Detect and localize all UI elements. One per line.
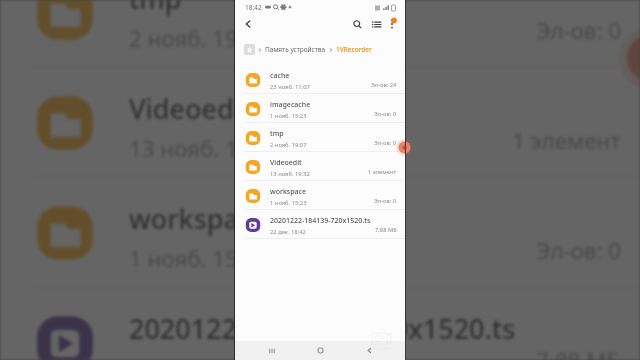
button[interactable]: Back [358, 341, 380, 360]
button[interactable]: Videoedit [234, 152, 406, 181]
staticText: 20201222-184139-720x1520.ts [129, 310, 516, 347]
staticText: Videoedit [129, 90, 252, 127]
staticText: 1 нояб. 15:23 [129, 243, 270, 273]
staticText: 22 дек. 18:42 [129, 353, 267, 360]
staticText: 22 дек. 18:42 [270, 228, 306, 236]
staticText: cache [270, 71, 290, 81]
staticText: Эл-ов: 0 [374, 197, 397, 205]
button[interactable]: View as list [367, 15, 385, 33]
staticText: 23 нояб. 11:07 [270, 83, 310, 91]
button[interactable]: cache [234, 65, 406, 94]
staticText: 2 нояб. 19:07 [270, 141, 307, 149]
button[interactable]: 20201222-184139-720x1520.ts [234, 210, 406, 239]
staticText: 1 нояб. 15:23 [270, 199, 307, 207]
button[interactable]: workspace [234, 181, 406, 210]
staticText: 1VRecorder [336, 45, 372, 54]
button[interactable]: tmp [0, 0, 640, 68]
staticText: tmp [129, 0, 182, 17]
button[interactable]: Videoedit [0, 68, 640, 178]
staticText: Videoedit [270, 158, 302, 168]
staticText: Эл-ов: 24 [371, 81, 397, 89]
button[interactable]: Recent apps [261, 341, 283, 360]
button[interactable]: 20201222-184139-720x1520.ts [0, 288, 640, 360]
button[interactable]: More options [383, 15, 401, 33]
staticText: 1 нояб. 15:23 [270, 112, 307, 120]
button[interactable]: tmp [234, 123, 406, 152]
staticText: 20201222-184139-720x1520.ts [270, 216, 371, 226]
button[interactable]: Recorder [625, 33, 640, 83]
button[interactable]: workspace [0, 178, 640, 288]
staticText: Эл-ов: 0 [536, 235, 621, 265]
staticText: 7,88 МБ [536, 345, 621, 360]
staticText: imagecache [270, 100, 311, 110]
staticText: 13 нояб. 19:32 [129, 133, 283, 163]
button[interactable]: Recorder [398, 141, 411, 154]
button[interactable]: Back [239, 15, 257, 33]
staticText: workspace [270, 187, 307, 197]
staticText: 13 нояб. 19:32 [270, 170, 310, 178]
staticText: 7,88 МБ [375, 226, 397, 234]
staticText: Эл-ов: 0 [374, 110, 397, 118]
staticText: 2 нояб. 19:07 [129, 23, 270, 53]
staticText: Память устройства [265, 45, 326, 54]
staticText: Эл-ов: 0 [536, 15, 621, 45]
button[interactable]: Search [348, 15, 366, 33]
button[interactable]: imagecache [234, 94, 406, 123]
staticText: 18:42 [245, 3, 262, 12]
staticText: workspace [129, 200, 268, 237]
button[interactable]: Home [309, 341, 331, 360]
staticText: tmp [270, 129, 284, 139]
staticText: Эл-ов: 0 [374, 139, 397, 147]
staticText: 1 элемент [368, 168, 397, 176]
staticText: 1 элемент [512, 125, 621, 155]
